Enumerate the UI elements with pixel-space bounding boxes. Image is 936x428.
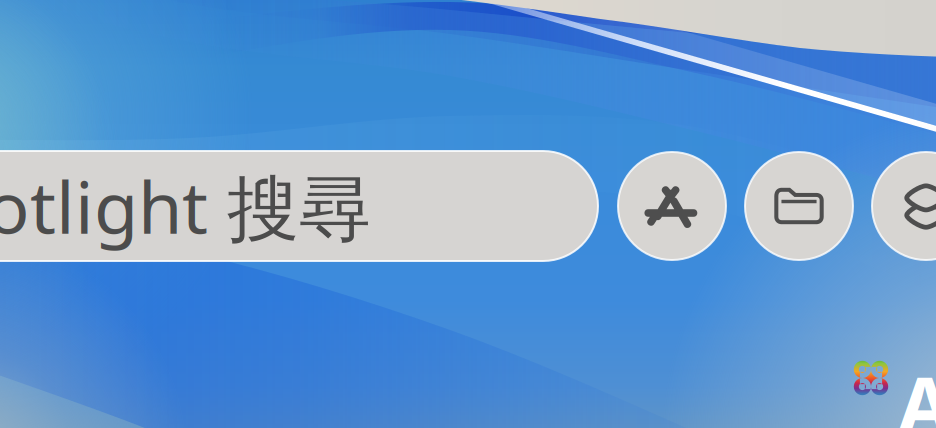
button[interactable]: App Store bbox=[618, 152, 726, 260]
button[interactable]: Stacks bbox=[872, 152, 936, 260]
button[interactable]: potlight 搜尋 bbox=[0, 151, 598, 261]
staticText: A bbox=[898, 352, 936, 428]
staticText: potlight 搜尋 bbox=[0, 158, 371, 254]
button[interactable]: Finder bbox=[745, 152, 853, 260]
